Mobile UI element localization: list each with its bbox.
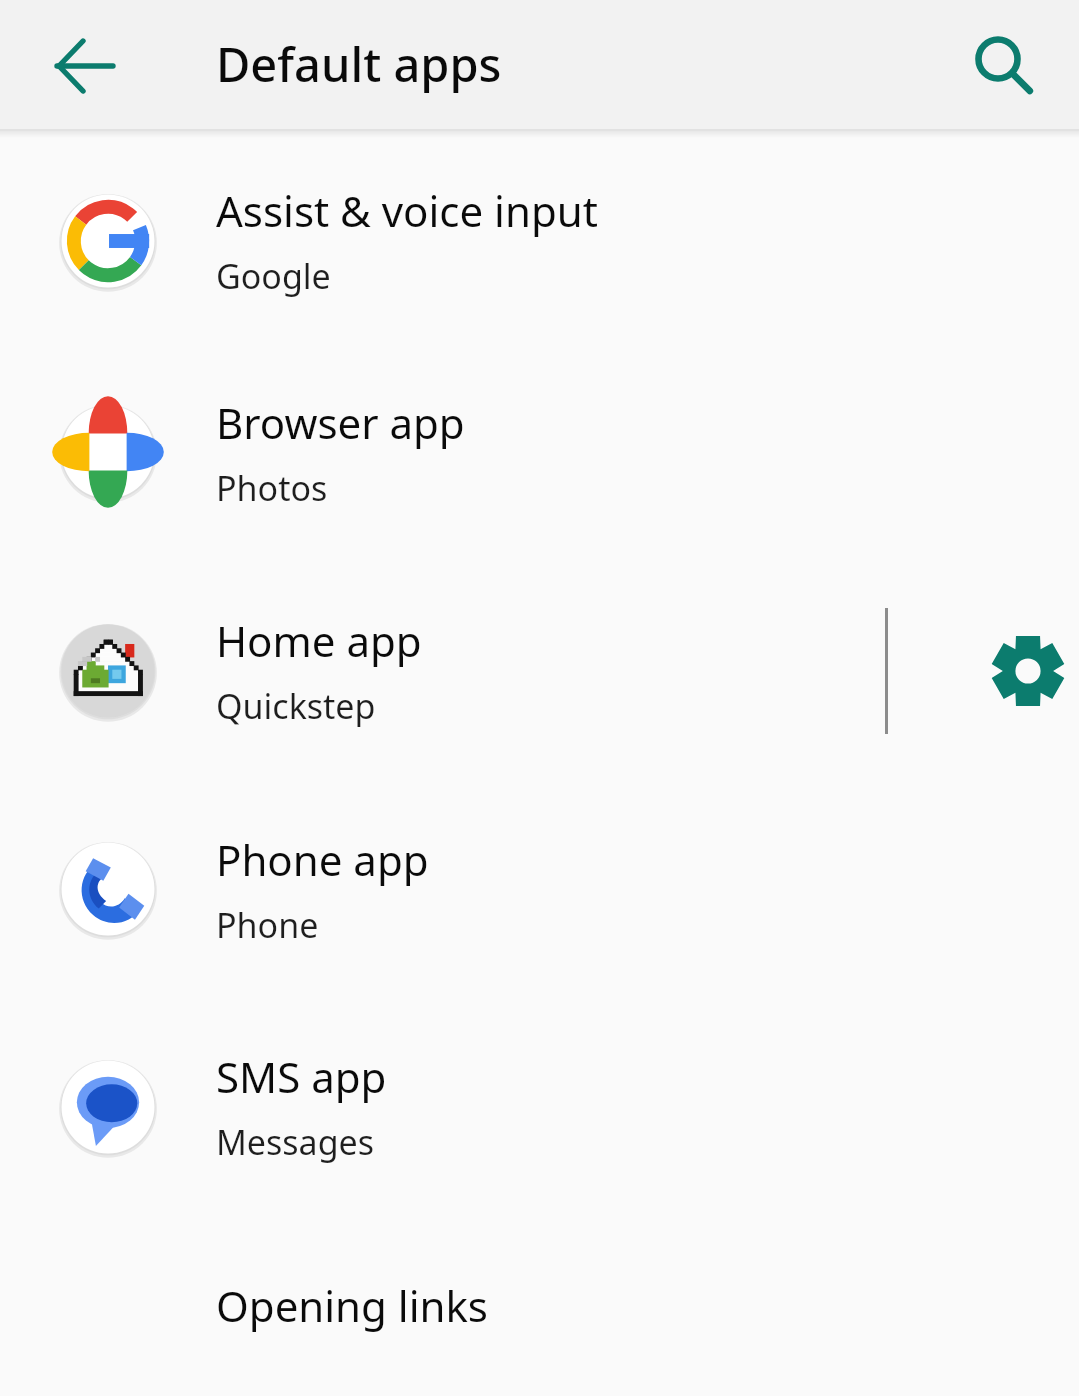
button[interactable]: SMS app [0,998,1079,1215]
button[interactable]: Home app [0,561,1079,780]
button[interactable]: Browser app [0,343,1079,561]
staticText: Home app [216,612,422,669]
staticText: SMS app [216,1048,387,1105]
staticText: Photos [216,465,328,511]
staticText: Default apps [216,32,502,96]
button[interactable]: Home app settings [973,616,1079,726]
button[interactable]: Assist & voice input [0,138,1079,343]
button[interactable]: Back [28,10,140,122]
staticText: Google [216,253,331,299]
button[interactable]: Opening links [0,1215,1079,1396]
button[interactable]: Phone app [0,780,1079,998]
staticText: Opening links [216,1277,488,1334]
staticText: Phone app [216,831,429,888]
staticText: Messages [216,1119,375,1165]
staticText: Phone [216,902,319,948]
staticText: Browser app [216,394,465,451]
staticText: Assist & voice input [216,182,598,239]
staticText: Quickstep [216,683,376,729]
button[interactable]: Search [945,11,1055,121]
